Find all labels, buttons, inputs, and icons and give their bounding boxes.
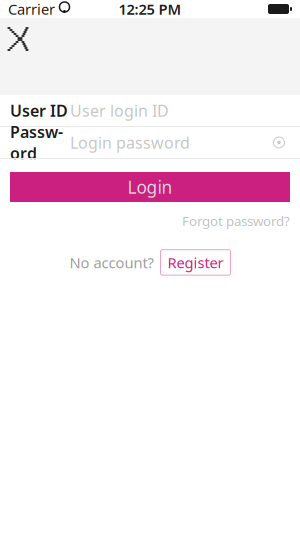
button[interactable]: Forgot password?	[182, 208, 290, 234]
staticText: 12:25 PM	[118, 0, 181, 19]
button[interactable]: Login	[10, 172, 290, 202]
staticText: Login	[127, 175, 172, 198]
staticText: Register	[167, 253, 223, 272]
staticText: User login ID	[70, 100, 169, 121]
staticText: User ID	[10, 100, 68, 121]
staticText: Password	[10, 121, 63, 164]
staticText: Forgot password?	[182, 212, 290, 230]
button[interactable]: Register	[160, 250, 230, 275]
button[interactable]: Close	[4, 23, 36, 55]
button[interactable]: Show password	[268, 131, 290, 153]
staticText: No account?	[69, 253, 153, 272]
staticText: Carrier	[8, 0, 55, 19]
staticText: Login password	[70, 132, 190, 153]
